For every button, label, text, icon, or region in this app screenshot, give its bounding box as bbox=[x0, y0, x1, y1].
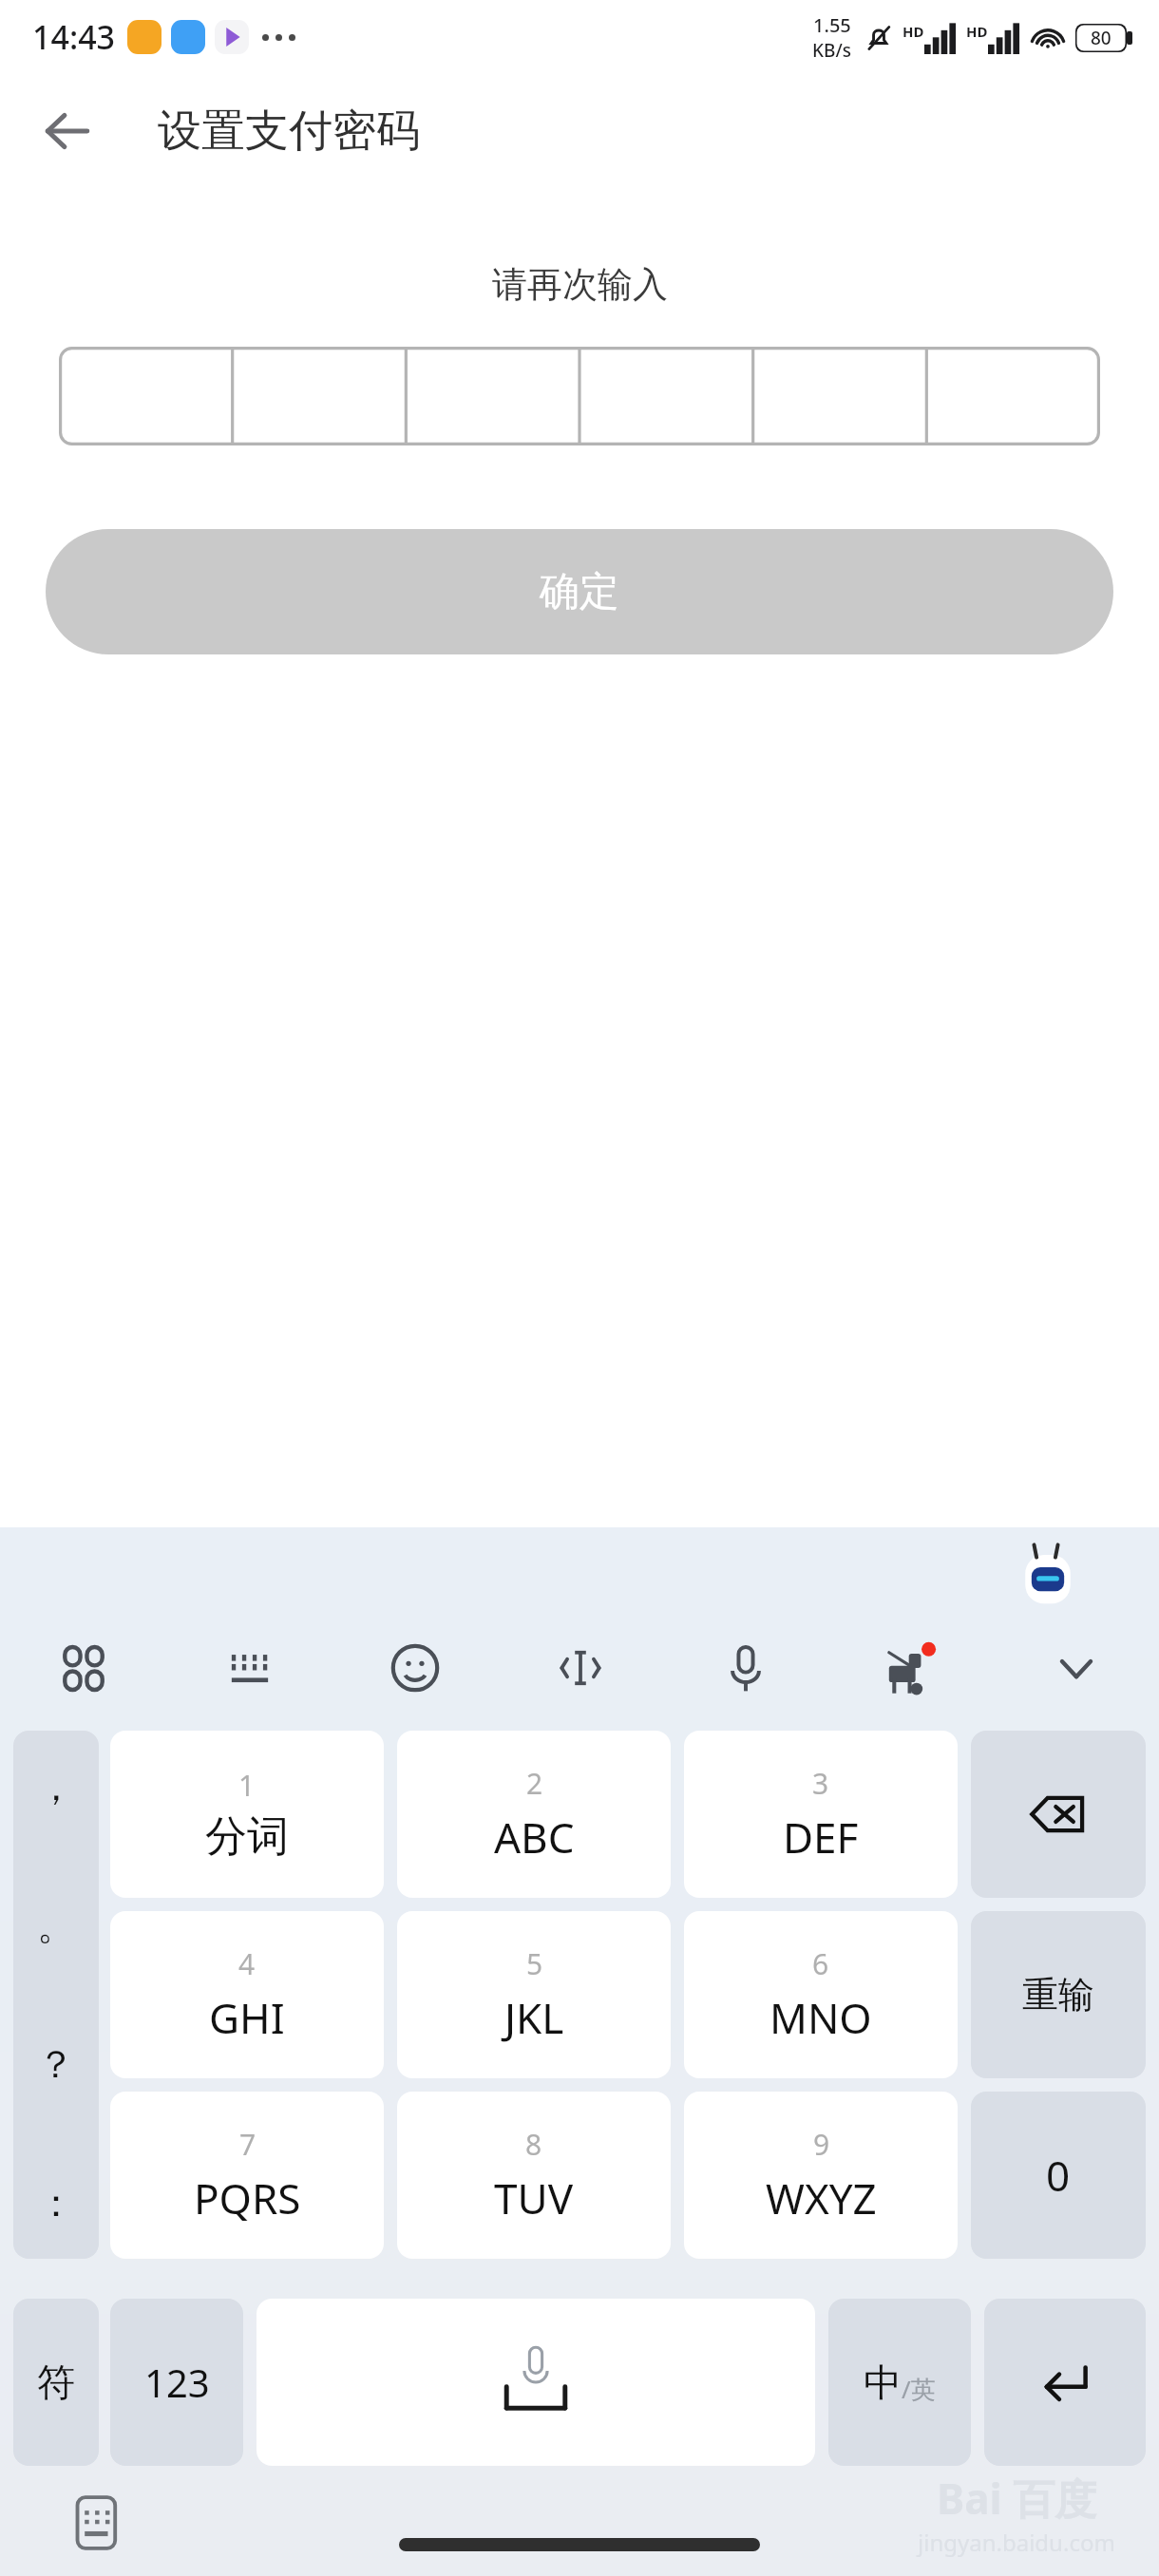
staticText: 重输 bbox=[1022, 1972, 1094, 2017]
button[interactable]: Space bbox=[256, 2299, 815, 2466]
button[interactable]: Password input bbox=[59, 347, 1100, 445]
staticText: 2 bbox=[526, 1764, 543, 1803]
button[interactable]: 重输 bbox=[971, 1911, 1146, 2078]
staticText: JKL bbox=[504, 1989, 564, 2046]
button[interactable]: Promotion bbox=[828, 1622, 994, 1714]
button[interactable]: Back bbox=[21, 85, 112, 177]
staticText: jingyan.baidu.com bbox=[918, 2527, 1115, 2558]
staticText: WXYZ bbox=[766, 2169, 877, 2226]
staticText: 。 bbox=[37, 1902, 75, 1949]
staticText: 6 bbox=[812, 1944, 829, 1983]
button[interactable]: Keyboard layout bbox=[166, 1622, 332, 1714]
button[interactable]: 7 bbox=[110, 2092, 384, 2259]
staticText: 9 bbox=[813, 2125, 830, 2164]
staticText: 符 bbox=[37, 2358, 75, 2406]
button[interactable]: 中 bbox=[828, 2299, 971, 2466]
staticText: 0 bbox=[1046, 2147, 1071, 2204]
staticText: ， bbox=[37, 1763, 75, 1810]
staticText: Bai 百度 bbox=[937, 2470, 1097, 2527]
button[interactable]: Enter bbox=[984, 2299, 1146, 2466]
button[interactable]: Hide keyboard bbox=[994, 1622, 1159, 1714]
staticText: GHI bbox=[209, 1989, 285, 2046]
button[interactable]: Apps bbox=[0, 1622, 166, 1714]
staticText: 14:43 bbox=[32, 15, 116, 59]
button[interactable]: 3 bbox=[684, 1731, 958, 1898]
button[interactable]: Switch keyboard bbox=[66, 2492, 127, 2553]
button[interactable]: 符 bbox=[13, 2299, 99, 2466]
staticText: ： bbox=[37, 2179, 75, 2226]
staticText: KB/s bbox=[812, 38, 851, 63]
button[interactable]: 5 bbox=[397, 1911, 671, 2078]
button[interactable]: 8 bbox=[397, 2092, 671, 2259]
staticText: 5 bbox=[526, 1944, 543, 1983]
staticText: HD bbox=[902, 22, 924, 41]
staticText: TUV bbox=[494, 2169, 574, 2226]
staticText: ？ bbox=[37, 2040, 75, 2088]
button[interactable]: ， bbox=[13, 1731, 99, 2259]
button[interactable]: 9 bbox=[684, 2092, 958, 2259]
button[interactable]: 123 bbox=[110, 2299, 243, 2466]
staticText: ABC bbox=[494, 1809, 575, 1866]
staticText: 80 bbox=[1091, 26, 1111, 50]
staticText: 1 bbox=[238, 1766, 256, 1805]
staticText: 123 bbox=[144, 2357, 210, 2408]
staticText: MNO bbox=[769, 1989, 872, 2046]
button[interactable]: 4 bbox=[110, 1911, 384, 2078]
button[interactable]: Assistant bbox=[1016, 1544, 1079, 1606]
button[interactable]: Edit text bbox=[498, 1622, 663, 1714]
staticText: 确定 bbox=[540, 567, 619, 617]
button[interactable]: Emoji bbox=[332, 1622, 498, 1714]
staticText: 设置支付密码 bbox=[158, 104, 420, 159]
staticText: PQRS bbox=[194, 2169, 301, 2226]
button[interactable]: 0 bbox=[971, 2092, 1146, 2259]
staticText: 请再次输入 bbox=[492, 262, 668, 307]
button[interactable]: Backspace bbox=[971, 1731, 1146, 1898]
staticText: 4 bbox=[238, 1944, 256, 1983]
staticText: 1.55 bbox=[813, 12, 851, 38]
staticText: 8 bbox=[525, 2125, 542, 2164]
staticText: HD bbox=[966, 22, 988, 41]
staticText: 7 bbox=[239, 2125, 256, 2164]
button[interactable]: Voice input bbox=[663, 1622, 828, 1714]
staticText: 中 bbox=[864, 2358, 902, 2406]
button[interactable]: 6 bbox=[684, 1911, 958, 2078]
staticText: 3 bbox=[812, 1764, 829, 1803]
button[interactable]: 确定 bbox=[46, 529, 1113, 654]
staticText: 分词 bbox=[205, 1810, 289, 1863]
staticText: /英 bbox=[902, 2372, 936, 2406]
staticText: DEF bbox=[783, 1809, 859, 1866]
button[interactable]: 1 bbox=[110, 1731, 384, 1898]
button[interactable]: 2 bbox=[397, 1731, 671, 1898]
